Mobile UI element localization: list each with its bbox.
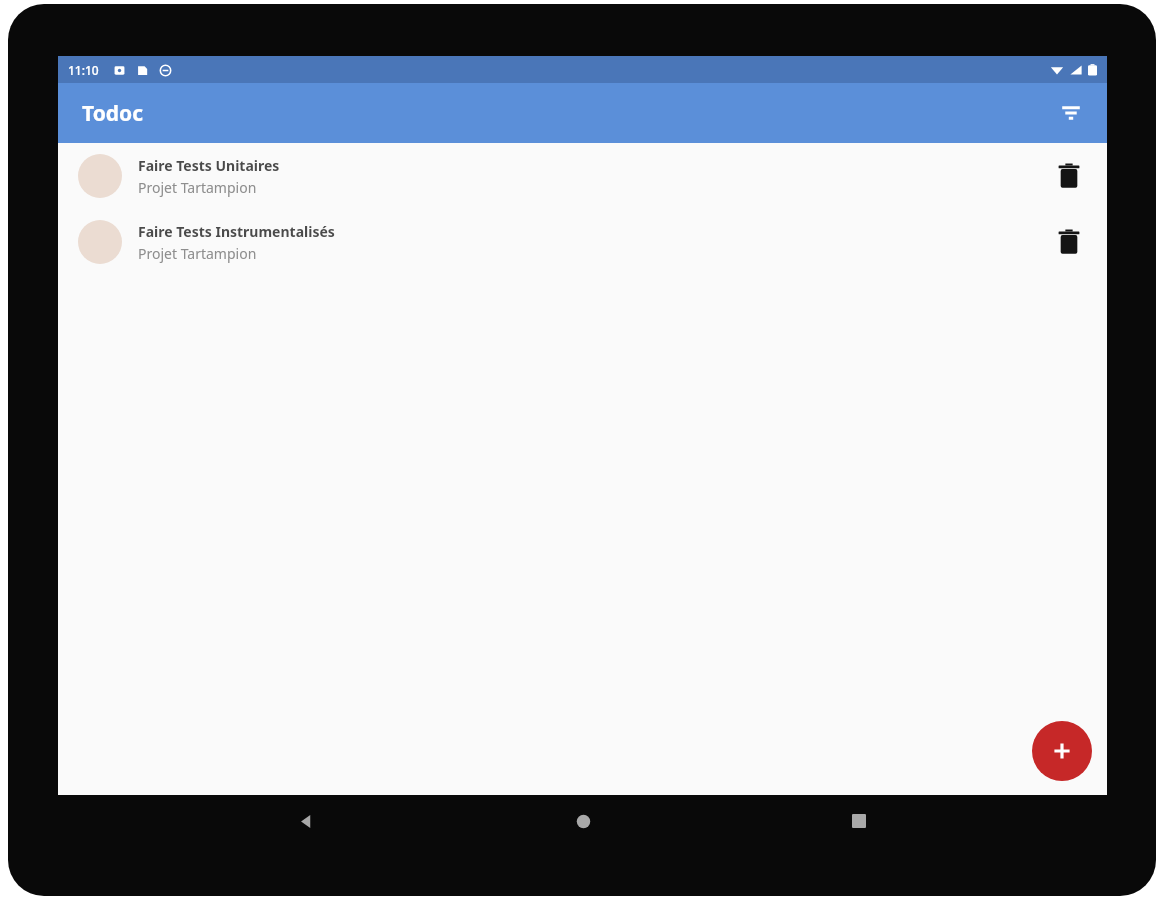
staticText: Faire Tests Unitaires bbox=[138, 156, 280, 175]
button[interactable]: Recent apps bbox=[831, 795, 887, 847]
staticText: 11:10 bbox=[68, 62, 99, 78]
button[interactable]: Add task bbox=[1032, 721, 1092, 781]
staticText: Projet Tartampion bbox=[138, 244, 257, 263]
button[interactable]: Delete task bbox=[1043, 216, 1095, 268]
button[interactable]: Back bbox=[278, 795, 334, 847]
staticText: Faire Tests Instrumentalisés bbox=[138, 222, 335, 241]
staticText: Projet Tartampion bbox=[138, 178, 257, 197]
button[interactable]: Delete task bbox=[1043, 150, 1095, 202]
button[interactable]: Filter tasks bbox=[1047, 89, 1095, 137]
button[interactable]: Home bbox=[555, 795, 611, 847]
staticText: Todoc bbox=[82, 99, 144, 128]
button[interactable]: Faire Tests Unitaires bbox=[58, 143, 1107, 209]
button[interactable]: Faire Tests Instrumentalisés bbox=[58, 209, 1107, 275]
